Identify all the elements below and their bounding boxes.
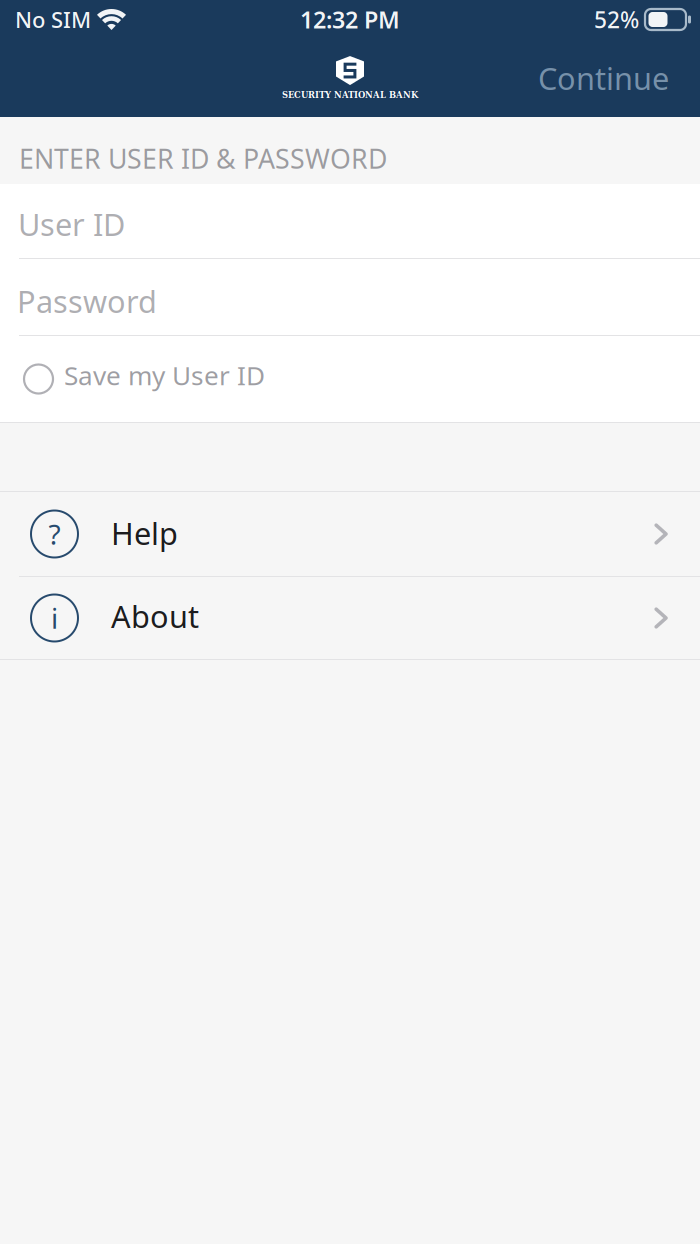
staticText: No SIM bbox=[15, 4, 91, 34]
staticText: 12:32 PM bbox=[300, 4, 400, 35]
staticText: i bbox=[51, 599, 58, 637]
staticText: User ID bbox=[18, 203, 125, 245]
staticText: Password bbox=[17, 280, 157, 322]
staticText: 52% bbox=[594, 4, 639, 35]
staticText: Help bbox=[111, 512, 178, 554]
staticText: ENTER USER ID & PASSWORD bbox=[19, 140, 387, 177]
staticText: Save my User ID bbox=[64, 357, 265, 393]
button[interactable]: ? bbox=[0, 492, 700, 576]
staticText: About bbox=[111, 595, 199, 637]
button[interactable]: Save my User ID bbox=[0, 336, 700, 422]
staticText: SECURITY NATIONAL BANK bbox=[282, 90, 418, 100]
button[interactable]: i bbox=[0, 577, 700, 659]
staticText: Continue bbox=[538, 57, 669, 99]
button[interactable]: Continue bbox=[524, 49, 683, 107]
staticText: ? bbox=[48, 515, 60, 553]
